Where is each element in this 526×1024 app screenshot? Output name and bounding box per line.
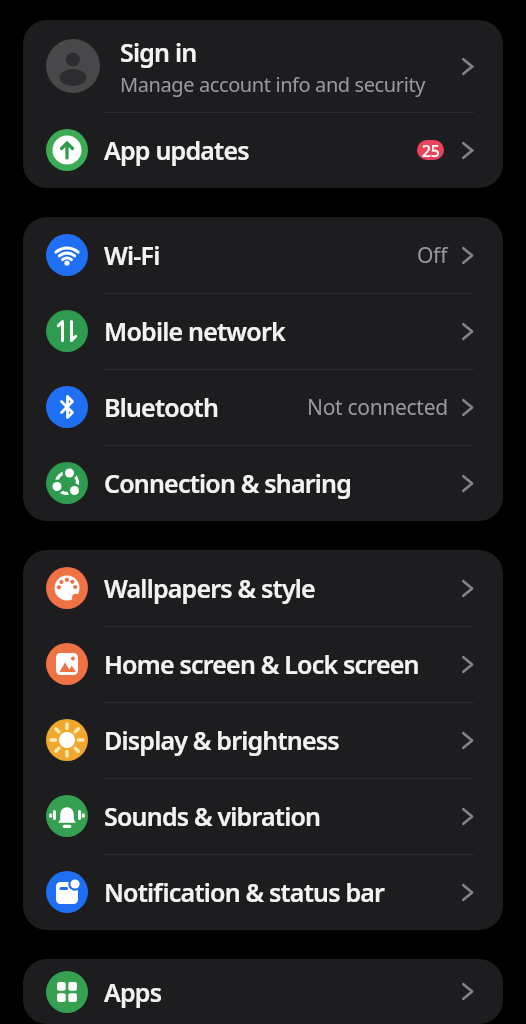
button[interactable]: Sign in	[23, 20, 503, 112]
button[interactable]: Wi-Fi	[23, 217, 503, 293]
staticText: Sounds & vibration	[104, 799, 462, 833]
staticText: Apps	[104, 975, 462, 1009]
staticText: Bluetooth	[104, 390, 307, 424]
staticText: Connection & sharing	[104, 466, 462, 500]
button[interactable]: Bluetooth	[23, 369, 503, 445]
staticText: Not connected	[307, 393, 448, 422]
staticText: Manage account info and security	[120, 71, 426, 98]
button[interactable]: Mobile network	[23, 293, 503, 369]
button[interactable]: Home screen & Lock screen	[23, 626, 503, 702]
staticText: 25	[422, 140, 440, 160]
button[interactable]: Wallpapers & style	[23, 550, 503, 626]
button[interactable]: App updates	[23, 112, 503, 188]
staticText: Notification & status bar	[104, 875, 462, 909]
staticText: Display & brightness	[104, 723, 462, 757]
button[interactable]: Apps	[23, 959, 503, 1024]
button[interactable]: Connection & sharing	[23, 445, 503, 521]
staticText: Home screen & Lock screen	[104, 647, 462, 681]
staticText: Wi-Fi	[104, 238, 417, 272]
staticText: Wallpapers & style	[104, 571, 462, 605]
staticText: Mobile network	[104, 314, 462, 348]
staticText: Off	[417, 241, 448, 270]
button[interactable]: Notification & status bar	[23, 854, 503, 930]
button[interactable]: Display & brightness	[23, 702, 503, 778]
button[interactable]: Sounds & vibration	[23, 778, 503, 854]
staticText: App updates	[104, 133, 417, 167]
staticText: Sign in	[120, 35, 197, 69]
